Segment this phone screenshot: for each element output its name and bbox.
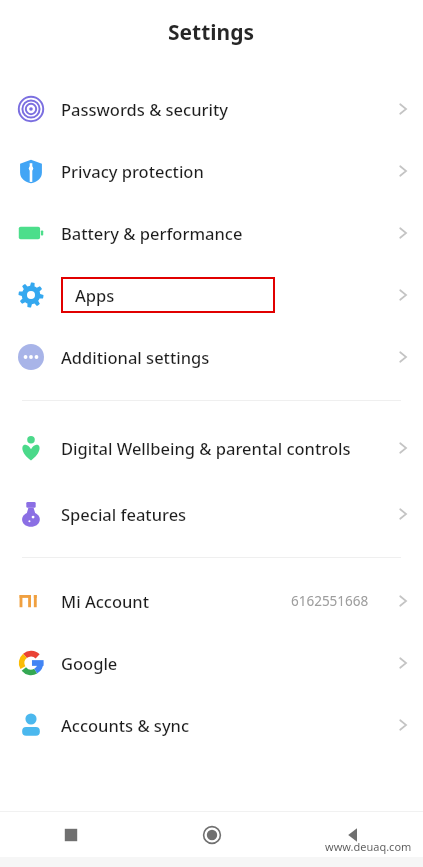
button[interactable]: Special features bbox=[0, 483, 423, 545]
staticText: Privacy protection bbox=[61, 160, 204, 182]
button[interactable]: Battery & performance bbox=[0, 202, 423, 264]
staticText: Google bbox=[61, 652, 118, 674]
button[interactable]: Mi Account bbox=[0, 570, 423, 632]
button[interactable]: Privacy protection bbox=[0, 140, 423, 202]
button[interactable]: Additional settings bbox=[0, 326, 423, 388]
staticText: Apps bbox=[75, 284, 115, 306]
staticText: Settings bbox=[168, 18, 255, 47]
staticText: Special features bbox=[61, 503, 187, 525]
button[interactable]: Back bbox=[282, 812, 423, 857]
button[interactable]: Digital Wellbeing & parental controls bbox=[0, 413, 423, 483]
button[interactable]: Google bbox=[0, 632, 423, 694]
staticText: Passwords & security bbox=[61, 98, 228, 120]
staticText: 6162551668 bbox=[291, 592, 369, 610]
button[interactable]: Home bbox=[141, 812, 282, 857]
staticText: Digital Wellbeing & parental controls bbox=[61, 437, 351, 459]
staticText: www.deuaq.com bbox=[325, 839, 412, 854]
button[interactable]: Passwords & security bbox=[0, 78, 423, 140]
button[interactable]: Accounts & sync bbox=[0, 694, 423, 756]
staticText: Accounts & sync bbox=[61, 714, 190, 736]
staticText: Mi Account bbox=[61, 590, 149, 612]
staticText: Battery & performance bbox=[61, 222, 243, 244]
button[interactable]: Recent apps bbox=[0, 812, 141, 857]
staticText: Additional settings bbox=[61, 346, 210, 368]
button[interactable]: Apps bbox=[0, 264, 423, 326]
